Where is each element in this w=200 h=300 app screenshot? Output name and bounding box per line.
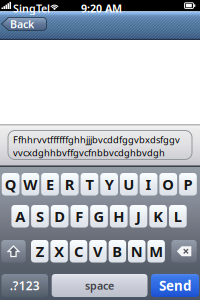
staticText: Send xyxy=(159,277,191,294)
staticText: space xyxy=(85,278,114,293)
button[interactable]: V xyxy=(89,240,107,262)
staticText: C xyxy=(74,241,83,261)
staticText: Back xyxy=(10,17,34,31)
staticText: N xyxy=(131,241,143,261)
button[interactable]: Back xyxy=(1,17,47,31)
staticText: Z xyxy=(36,241,44,261)
staticText: H xyxy=(113,206,124,226)
button[interactable]: Y xyxy=(100,173,118,195)
button[interactable]: Z xyxy=(31,240,48,262)
staticText: S xyxy=(36,206,44,226)
staticText: K xyxy=(153,206,163,226)
button[interactable]: O xyxy=(159,173,177,195)
staticText: L xyxy=(174,206,182,226)
button[interactable]: Q xyxy=(2,173,19,195)
button[interactable]: Delete xyxy=(171,240,197,262)
staticText: J xyxy=(136,206,141,226)
staticText: U xyxy=(123,174,134,194)
button[interactable]: S xyxy=(31,205,49,227)
button[interactable]: H xyxy=(110,205,128,227)
button[interactable]: D xyxy=(51,205,68,227)
staticText: I xyxy=(146,174,152,194)
staticText: X xyxy=(54,241,64,261)
staticText: Y xyxy=(105,174,114,194)
button[interactable]: Send xyxy=(151,274,199,297)
staticText: A xyxy=(15,206,25,226)
button[interactable]: B xyxy=(109,240,126,262)
button[interactable]: G xyxy=(90,205,108,227)
staticText: D xyxy=(54,206,65,226)
button[interactable]: T xyxy=(81,173,98,195)
button[interactable]: W xyxy=(21,173,39,195)
button[interactable]: Ffhhrvvtffffffghhjjjbvcddfggvbxdsfggv xyxy=(8,130,192,159)
staticText: V xyxy=(93,241,103,261)
staticText: Q xyxy=(5,174,17,194)
button[interactable]: F xyxy=(70,205,88,227)
staticText: SingTel xyxy=(13,1,50,15)
button[interactable]: L xyxy=(169,205,187,227)
staticText: .?123 xyxy=(10,277,40,293)
staticText: G xyxy=(93,206,104,226)
button[interactable]: I xyxy=(140,173,157,195)
button[interactable]: K xyxy=(149,205,167,227)
staticText: B xyxy=(112,241,122,261)
button[interactable]: space xyxy=(52,274,147,297)
button[interactable]: U xyxy=(120,173,138,195)
button[interactable]: .?123 xyxy=(1,274,48,297)
staticText: P xyxy=(183,174,192,194)
button[interactable]: M xyxy=(147,240,165,262)
staticText: R xyxy=(65,174,75,194)
button[interactable]: E xyxy=(41,173,59,195)
staticText: 9:20 AM xyxy=(81,1,122,15)
staticText: M xyxy=(149,241,163,261)
button[interactable]: J xyxy=(130,205,147,227)
button[interactable]: R xyxy=(61,173,79,195)
staticText: W xyxy=(23,174,37,194)
staticText: vvcxdghhbvffgvcfnbbvcdghbvdgh xyxy=(13,146,165,159)
staticText: T xyxy=(85,174,93,194)
button[interactable]: C xyxy=(70,240,87,262)
staticText: Ffhhrvvtffffffghhjjjbvcddfggvbxdsfggv xyxy=(13,133,180,146)
button[interactable]: N xyxy=(128,240,145,262)
staticText: E xyxy=(46,174,54,194)
button[interactable]: X xyxy=(50,240,68,262)
staticText: O xyxy=(162,174,174,194)
button[interactable]: P xyxy=(179,173,197,195)
button[interactable]: Shift xyxy=(1,240,26,262)
button[interactable]: A xyxy=(11,205,29,227)
staticText: F xyxy=(75,206,83,226)
